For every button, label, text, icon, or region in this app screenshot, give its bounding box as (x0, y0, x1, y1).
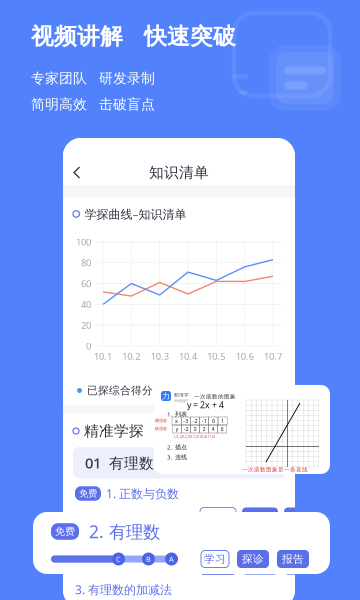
staticText: 精准学探 (84, 422, 144, 440)
staticText: 视频讲解 快速突破 (31, 23, 236, 50)
staticText: 纵坐标 (155, 426, 167, 431)
staticText: 01 有理数 (85, 453, 154, 473)
staticText: 一次函数的图象 (194, 393, 236, 400)
button[interactable]: Back (66, 161, 88, 184)
staticText: 1. 正数与负数 (106, 485, 179, 501)
staticText: 0 (212, 417, 215, 425)
staticText: 2. 描点 (167, 443, 187, 451)
staticText: 6 (221, 425, 224, 433)
button[interactable]: 探诊 (237, 550, 269, 568)
staticText: 免费 (55, 525, 75, 538)
staticText: (-3,-2)(-2,0)(-1,2) (0,4) (1,6) (174, 434, 215, 439)
staticText: 探诊 (242, 552, 264, 566)
button[interactable]: 报告 (277, 550, 309, 568)
staticText: 0 (86, 340, 91, 352)
staticText: 2 (203, 425, 206, 433)
staticText: -3 (183, 417, 188, 425)
button[interactable]: 学习 (200, 507, 236, 527)
staticText: -2 (184, 425, 189, 433)
staticText: 60 (81, 277, 91, 290)
staticText: 80 (81, 256, 91, 269)
staticText: 10.6 (236, 350, 254, 362)
staticText: 已探综合得分 (87, 384, 153, 397)
staticText: x (175, 417, 178, 425)
staticText: 1 (221, 417, 224, 425)
staticText: -1 (202, 417, 207, 425)
button[interactable]: 报告 (284, 555, 320, 575)
staticText: 4 (212, 425, 215, 433)
staticText: 学习 (207, 558, 229, 572)
staticText: 2. 有理数 (106, 534, 155, 549)
staticText: 10.7 (264, 350, 282, 362)
staticText: 40 (81, 298, 91, 310)
staticText: 3. 有理数的加减法 (75, 582, 172, 597)
staticText: 2. 有理数 (89, 520, 160, 543)
staticText: 10.4 (179, 350, 197, 362)
staticText: 力 (162, 391, 170, 401)
staticText: 知识清单 (149, 163, 209, 181)
button[interactable]: 探诊 (242, 555, 278, 575)
staticText: y = 2x + 4 (187, 399, 224, 411)
staticText: 3. 连线 (167, 453, 187, 461)
staticText: C (116, 554, 121, 564)
staticText: 专家团队 研发录制 (31, 70, 155, 87)
staticText: y (176, 425, 179, 433)
staticText: 报告 (291, 558, 313, 572)
staticText: C (129, 561, 133, 569)
staticText: B (146, 554, 151, 564)
staticText: 学探曲线–知识清单 (84, 206, 186, 222)
staticText: 报告 (282, 552, 304, 566)
staticText: 精准学 (174, 392, 189, 398)
staticText: 20 (81, 319, 91, 331)
staticText: B (156, 561, 160, 569)
staticText: 报告 (291, 510, 313, 524)
staticText: 一次函数图象是一条直线 (242, 466, 308, 473)
button[interactable]: 报告 (284, 507, 320, 527)
staticText: 10.3 (151, 350, 169, 362)
staticText: 免费 (79, 536, 97, 547)
staticText: 横坐标 (155, 418, 167, 423)
staticText: 0 (194, 425, 197, 433)
staticText: 学习 (204, 552, 226, 566)
staticText: 学而思旗下 (174, 398, 189, 403)
staticText: A (169, 554, 174, 564)
staticText: 10.1 (94, 350, 112, 362)
button[interactable]: 探诊 (242, 507, 278, 527)
staticText: 10.2 (122, 350, 140, 362)
button[interactable]: 学习 (201, 550, 229, 567)
staticText: 10.5 (207, 350, 225, 362)
staticText: 1. 列表 (167, 410, 187, 418)
staticText: 100 (76, 236, 91, 248)
staticText: A (176, 561, 180, 569)
staticText: 简明高效 击破盲点 (31, 96, 155, 113)
staticText: 探诊 (249, 510, 271, 524)
staticText: -2 (192, 417, 197, 425)
button[interactable]: 学习 (200, 555, 236, 575)
staticText: 免费 (79, 488, 97, 499)
staticText: 探诊 (249, 558, 271, 572)
